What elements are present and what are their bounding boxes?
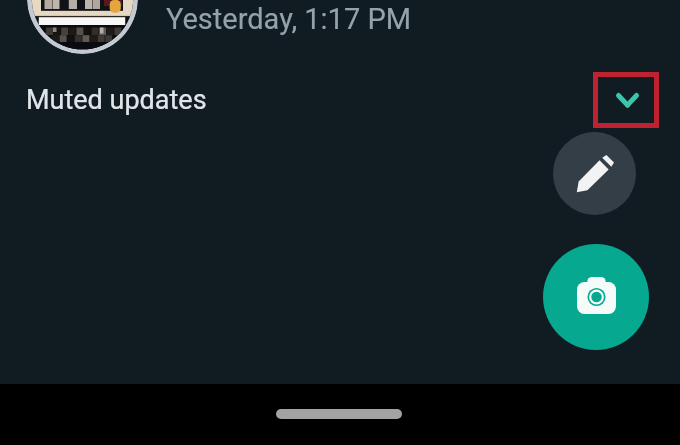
staticText: Yesterday, 1:17 PM xyxy=(166,2,412,36)
staticText: Muted updates xyxy=(26,84,207,116)
button[interactable]: Status avatar xyxy=(27,0,138,54)
button[interactable]: Muted updates xyxy=(0,71,680,128)
button[interactable]: Camera xyxy=(543,244,649,350)
button[interactable]: Expand muted updates xyxy=(605,78,649,122)
button[interactable]: Edit status xyxy=(553,132,636,215)
